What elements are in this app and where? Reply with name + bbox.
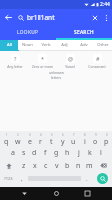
button[interactable]: *	[29, 54, 55, 69]
button[interactable]: #	[84, 54, 110, 69]
button[interactable]: 8	[79, 133, 90, 146]
button[interactable]: @	[57, 54, 83, 69]
button[interactable]: Other	[93, 40, 112, 50]
button[interactable]: k	[84, 146, 95, 159]
staticText: n	[76, 161, 81, 171]
button[interactable]: j	[73, 146, 84, 159]
staticText: 3	[29, 133, 31, 137]
staticText: Any letter	[7, 64, 23, 69]
staticText: Consonant	[88, 64, 106, 69]
staticText: 5	[51, 133, 53, 137]
button[interactable]: Search	[97, 173, 108, 184]
button[interactable]: Adv	[74, 40, 93, 50]
staticText: j	[78, 148, 80, 158]
staticText: w	[15, 137, 21, 146]
button[interactable]: Adj	[55, 40, 74, 50]
staticText: q	[4, 137, 9, 146]
staticText: t	[50, 137, 53, 146]
staticText: Verb	[41, 42, 51, 48]
staticText: @	[68, 55, 73, 62]
staticText: Noun	[22, 42, 33, 48]
button[interactable]: Recents	[81, 187, 94, 200]
button[interactable]: s	[18, 146, 29, 159]
staticText: m	[86, 161, 93, 171]
staticText: 0	[106, 133, 108, 137]
button[interactable]: ?	[2, 54, 28, 69]
button[interactable]: ?123	[0, 172, 17, 185]
staticText: ?	[14, 55, 17, 62]
staticText: a	[11, 148, 15, 158]
button[interactable]: .	[82, 172, 92, 185]
staticText: 1	[6, 133, 8, 137]
staticText: v	[55, 161, 59, 171]
button[interactable]: l	[95, 146, 106, 159]
button[interactable]: Noun	[18, 40, 36, 50]
button[interactable]: Shift	[0, 159, 18, 172]
staticText: unknown	[49, 70, 64, 75]
staticText: .	[86, 175, 88, 183]
button[interactable]: m	[84, 159, 95, 172]
button[interactable]: SEARCH	[56, 26, 112, 38]
staticText: 7	[73, 133, 75, 137]
staticText: Adj	[61, 42, 68, 48]
staticText: x	[33, 161, 37, 171]
staticText: Zero or more	[32, 64, 53, 69]
button[interactable]: More options	[101, 12, 112, 23]
staticText: c	[44, 161, 48, 171]
button[interactable]: 7	[68, 133, 79, 146]
button[interactable]: c	[40, 159, 51, 172]
button[interactable]: 4	[35, 133, 46, 146]
staticText: f	[44, 148, 47, 158]
button[interactable]: Back	[18, 187, 31, 200]
button[interactable]: d	[29, 146, 40, 159]
staticText: SEARCH	[74, 29, 94, 36]
button[interactable]: f	[40, 146, 51, 159]
button[interactable]: 2	[12, 133, 24, 146]
button[interactable]: z	[18, 159, 29, 172]
button[interactable]: n	[73, 159, 84, 172]
staticText: Vowel	[65, 64, 75, 69]
staticText: p	[104, 137, 109, 146]
staticText: b	[65, 161, 70, 171]
staticText: u	[71, 137, 76, 146]
staticText: k	[88, 148, 92, 158]
button[interactable]: Backspace	[95, 159, 112, 172]
staticText: br1ll1ant	[27, 13, 88, 22]
button[interactable]: LOOKUP	[0, 26, 56, 38]
button[interactable]: v	[51, 159, 62, 172]
staticText: 2	[17, 133, 19, 137]
staticText: letters	[51, 75, 62, 80]
staticText: ?123	[4, 176, 13, 181]
button[interactable]: x	[29, 159, 40, 172]
staticText: 2:44	[100, 1, 110, 8]
button[interactable]: All	[0, 40, 18, 50]
button[interactable]: 0	[101, 133, 112, 146]
staticText: All	[7, 42, 12, 48]
button[interactable]: Back	[0, 9, 17, 26]
button[interactable]: h	[62, 146, 73, 159]
button[interactable]: Home	[50, 187, 63, 200]
button[interactable]: 6	[57, 133, 68, 146]
button[interactable]: ,	[17, 172, 27, 185]
staticText: z	[22, 161, 26, 171]
staticText: *	[41, 55, 45, 62]
button[interactable]: 9	[90, 133, 101, 146]
button[interactable]: Verb	[36, 40, 55, 50]
button[interactable]: 5	[46, 133, 57, 146]
staticText: LOOKUP	[17, 29, 39, 36]
staticText: e	[28, 137, 32, 146]
button[interactable]: 3	[24, 133, 35, 146]
button[interactable]: a	[7, 146, 18, 159]
staticText: h	[65, 148, 70, 158]
staticText: 6	[62, 133, 64, 137]
staticText: d	[32, 148, 37, 158]
button[interactable]: b	[62, 159, 73, 172]
staticText: #	[96, 55, 100, 62]
staticText: Other	[97, 42, 109, 48]
button[interactable]: g	[51, 146, 62, 159]
button[interactable]: Clear	[88, 11, 101, 24]
staticText: g	[54, 148, 59, 158]
button[interactable]: 1	[0, 133, 12, 146]
staticText: 4	[40, 133, 42, 137]
